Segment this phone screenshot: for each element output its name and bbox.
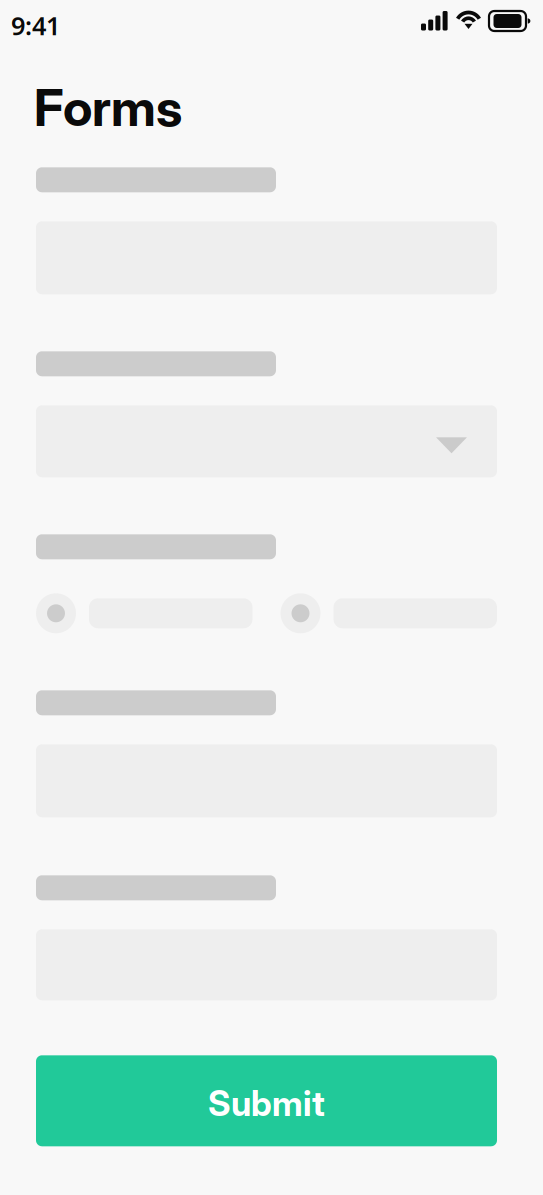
button[interactable]: Submit — [36, 1055, 497, 1146]
staticText: Forms — [34, 77, 182, 138]
staticText: 9:41 — [11, 9, 60, 42]
staticText: Submit — [208, 1082, 325, 1124]
button[interactable]: First option — [36, 593, 252, 633]
button[interactable]: Second option — [280, 593, 497, 633]
